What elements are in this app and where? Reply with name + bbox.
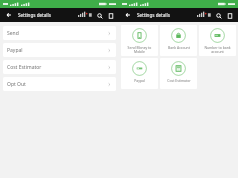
button[interactable]: Opt Out — [3, 77, 116, 91]
button[interactable]: Number to bank account — [199, 25, 236, 56]
button[interactable]: Send — [3, 26, 116, 40]
button[interactable]: Cost Estimator — [160, 58, 197, 89]
staticText: Send — [7, 30, 19, 37]
staticText: Paypal — [134, 78, 145, 83]
button[interactable]: More options — [225, 11, 234, 20]
button[interactable]: More options — [106, 11, 115, 20]
staticText: Opt Out — [7, 81, 26, 88]
staticText: Paypal — [7, 47, 23, 54]
staticText: Settings details — [137, 12, 170, 18]
button[interactable]: Search — [95, 11, 104, 20]
staticText: Cost Estimator — [167, 78, 191, 83]
button[interactable]: Paypal — [121, 58, 158, 89]
staticText: Settings details — [18, 12, 51, 18]
staticText: Send Money to Mobile Number — [123, 45, 156, 53]
button[interactable]: Send Money to Mobile Number — [121, 25, 158, 56]
staticText: Number to bank account — [201, 45, 234, 53]
staticText: Bank Account — [168, 45, 190, 50]
button[interactable]: Search — [214, 11, 223, 20]
button[interactable]: Back — [4, 10, 14, 20]
button[interactable]: Cost Estimator — [3, 60, 116, 74]
button[interactable]: Bank Account — [160, 25, 197, 56]
button[interactable]: Paypal — [3, 43, 116, 57]
staticText: Cost Estimator — [7, 64, 42, 71]
button[interactable]: Back — [123, 10, 133, 20]
